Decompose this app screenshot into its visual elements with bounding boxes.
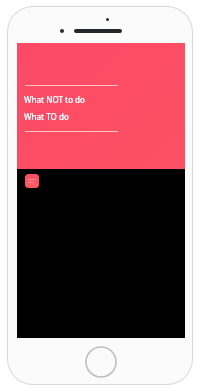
staticText: What NOT to do <box>24 94 85 105</box>
button[interactable]: What TO do <box>24 111 69 122</box>
button[interactable]: App icon <box>25 174 39 188</box>
button[interactable]: Home <box>85 346 117 378</box>
staticText: What TO do <box>24 111 69 122</box>
button[interactable]: What NOT to do <box>24 94 85 105</box>
